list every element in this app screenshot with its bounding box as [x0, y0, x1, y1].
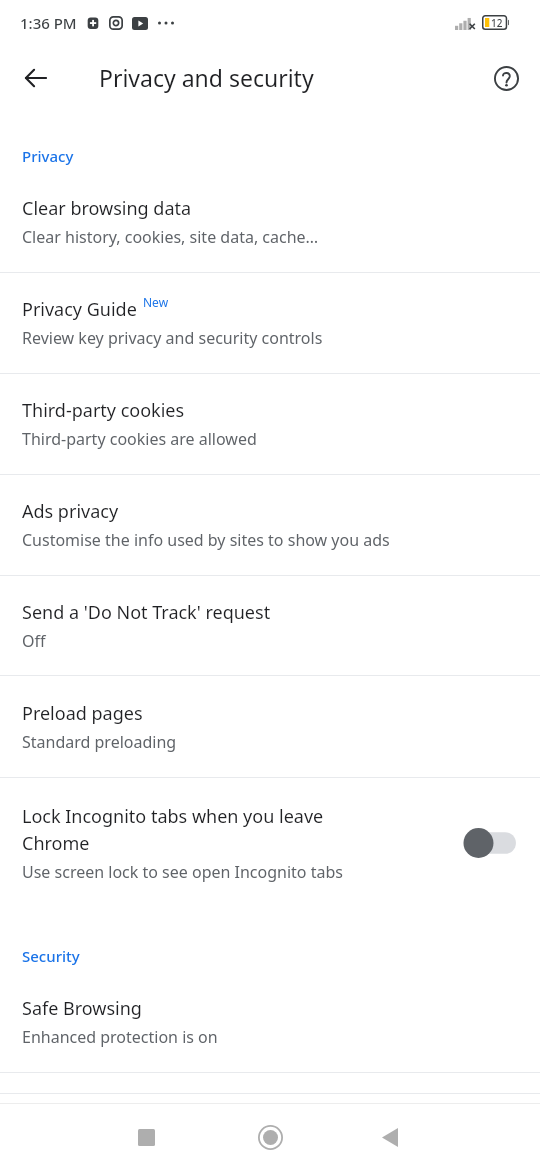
button[interactable]: Back	[360, 1107, 420, 1167]
button[interactable]: Back	[10, 52, 62, 104]
staticText: Clear browsing data	[22, 196, 192, 221]
staticText: Privacy and security	[99, 62, 314, 93]
staticText: Ads privacy	[22, 499, 119, 524]
button[interactable]: Clear browsing data	[0, 172, 540, 272]
button[interactable]: Third-party cookies	[0, 374, 540, 474]
staticText: Safe Browsing	[22, 996, 142, 1021]
button[interactable]: Home	[240, 1107, 300, 1167]
button[interactable]: Safe Browsing	[0, 972, 540, 1072]
button[interactable]: Help	[480, 52, 532, 104]
staticText: Send a 'Do Not Track' request	[22, 600, 271, 625]
staticText: Privacy	[22, 146, 74, 166]
button[interactable]: Preload pages	[0, 676, 540, 777]
staticText: Review key privacy and security controls	[22, 327, 323, 349]
button[interactable]: Ads privacy	[0, 475, 540, 575]
button[interactable]: Recent apps	[116, 1107, 176, 1167]
button[interactable]: Send a 'Do Not Track' request	[0, 576, 540, 675]
staticText: Customise the info used by sites to show…	[22, 529, 390, 551]
staticText: Preload pages	[22, 701, 143, 726]
staticText: New	[143, 294, 169, 310]
button[interactable]: Privacy Guide	[0, 273, 540, 373]
staticText: Privacy Guide	[22, 297, 137, 322]
staticText: Clear history, cookies, site data, cache…	[22, 226, 319, 248]
staticText: Standard preloading	[22, 731, 177, 753]
button[interactable]: Lock Incognito tabs toggle, off	[464, 823, 520, 863]
staticText: Use screen lock to see open Incognito ta…	[22, 861, 343, 883]
staticText: 1:36 PM	[20, 13, 77, 33]
staticText: Off	[22, 630, 46, 652]
button[interactable]: Lock Incognito tabs when you leave	[0, 778, 540, 908]
staticText: Lock Incognito tabs when you leave	[22, 804, 324, 829]
staticText: Chrome	[22, 831, 90, 856]
staticText: 12	[491, 16, 503, 30]
staticText: Third-party cookies	[22, 398, 185, 423]
staticText: Third-party cookies are allowed	[22, 428, 257, 450]
staticText: Enhanced protection is on	[22, 1026, 218, 1048]
staticText: Security	[22, 946, 80, 966]
